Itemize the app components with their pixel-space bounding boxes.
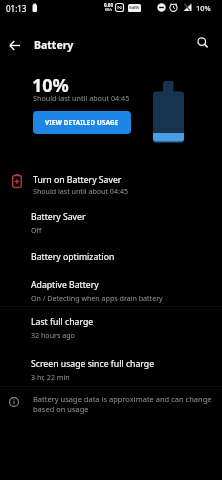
staticText: Adaptive Battery <box>31 279 99 291</box>
button[interactable]: VIEW DETAILED USAGE <box>33 111 131 134</box>
staticText: Should last until about 04:45 <box>33 186 128 196</box>
button[interactable]: Turn on Battery Saver <box>0 165 222 203</box>
staticText: Battery <box>34 38 74 52</box>
staticText: Battery optimization <box>31 251 115 263</box>
staticText: On / Detecting when apps drain battery <box>31 293 163 303</box>
staticText: VIEW DETAILED USAGE <box>45 118 119 127</box>
staticText: Off <box>31 225 42 235</box>
staticText: 10% <box>32 73 69 98</box>
staticText: 01:13 <box>6 3 27 14</box>
staticText: based on usage <box>33 404 89 414</box>
button[interactable] <box>190 30 216 56</box>
button[interactable]: Battery optimization <box>0 242 222 272</box>
staticText: 32 hours ago <box>31 330 75 340</box>
button[interactable] <box>2 32 28 58</box>
button[interactable]: Screen usage since full charge <box>0 351 222 389</box>
staticText: 0.00 <box>104 2 113 8</box>
staticText: 10% <box>196 3 211 13</box>
staticText: Should last until about 04:45 <box>33 93 130 103</box>
staticText: KB/s <box>105 7 113 12</box>
staticText: VoWiFi <box>129 6 140 10</box>
button[interactable]: Battery Saver <box>0 204 222 242</box>
staticText: Battery usage data is approximate and ca… <box>33 394 212 404</box>
staticText: 3 hr, 22 min <box>31 372 70 382</box>
staticText: Screen usage since full charge <box>31 358 155 370</box>
button[interactable]: Last full charge <box>0 309 222 347</box>
staticText: Turn on Battery Saver <box>33 174 122 186</box>
staticText: Last full charge <box>31 316 94 328</box>
staticText: Battery Saver <box>31 211 86 223</box>
button[interactable]: Adaptive Battery <box>0 272 222 310</box>
